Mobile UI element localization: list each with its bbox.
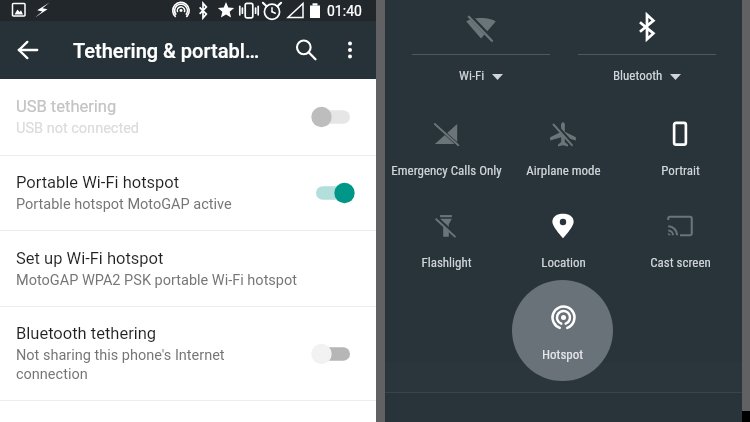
staticText: Tethering & portabl… <box>73 39 260 62</box>
button[interactable]: On <box>311 179 355 207</box>
staticText: Portrait <box>661 163 700 178</box>
button[interactable]: Cast screen <box>618 207 742 283</box>
staticText: Set up Wi-Fi hotspot <box>16 249 164 268</box>
staticText: MotoGAP WPA2 PSK portable Wi-Fi hotspot <box>16 272 298 289</box>
button[interactable]: Off <box>311 340 355 368</box>
button[interactable]: Flashlight <box>384 207 508 283</box>
staticText: Not sharing this phone's Internet connec… <box>16 347 225 383</box>
button[interactable]: More options <box>330 21 370 79</box>
button[interactable]: Portable Wi-Fi hotspot <box>0 156 376 230</box>
staticText: Hotspot <box>542 347 584 362</box>
button[interactable]: Portrait <box>618 115 742 191</box>
button[interactable]: Bluetooth tethering <box>0 307 376 400</box>
button[interactable]: Wi-Fi <box>401 0 561 86</box>
button[interactable]: Location <box>501 207 625 283</box>
staticText: Bluetooth <box>613 68 663 83</box>
staticText: Location <box>541 255 586 270</box>
button[interactable]: Off <box>311 103 355 131</box>
button[interactable]: Emergency Calls Only <box>384 115 508 191</box>
button[interactable]: Set up Wi-Fi hotspot <box>0 231 376 306</box>
button[interactable]: Airplane mode <box>501 115 625 191</box>
staticText: Portable hotspot MotoGAP active <box>16 196 232 213</box>
staticText: Flashlight <box>421 255 472 270</box>
staticText: Emergency Calls Only <box>391 163 502 178</box>
staticText: Airplane mode <box>526 163 601 178</box>
staticText: 01:40 <box>327 3 362 19</box>
staticText: USB tethering <box>16 97 117 116</box>
staticText: USB not connected <box>16 120 140 137</box>
staticText: Wi-Fi <box>459 68 485 83</box>
staticText: Bluetooth tethering <box>16 324 157 343</box>
staticText: Portable Wi-Fi hotspot <box>16 173 180 192</box>
button[interactable]: Bluetooth <box>567 0 727 86</box>
staticText: Cast screen <box>650 255 711 270</box>
button[interactable]: Hotspot <box>512 280 613 381</box>
button[interactable]: USB tethering <box>0 79 376 155</box>
button[interactable]: Search <box>282 21 330 79</box>
button[interactable]: Back <box>4 21 52 79</box>
